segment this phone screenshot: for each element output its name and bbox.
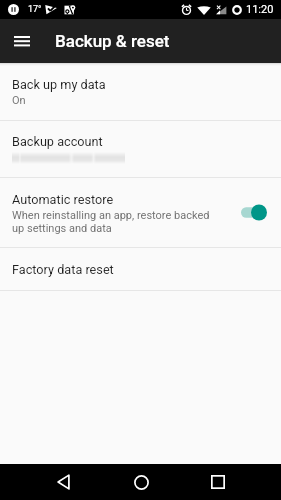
button[interactable]: Automatic restore on	[241, 204, 267, 221]
staticText: When reinstalling an app, restore backed…	[12, 209, 212, 235]
button[interactable]: Automatic restore	[0, 178, 281, 247]
button[interactable]: Back up my data	[0, 63, 281, 120]
staticText: On	[12, 94, 26, 107]
button[interactable]: Recent apps	[200, 464, 236, 500]
staticText: Backup & reset	[55, 31, 170, 51]
button[interactable]: Factory data reset	[0, 248, 281, 290]
staticText: 17°	[28, 4, 42, 15]
staticText: Factory data reset	[12, 262, 114, 277]
button[interactable]: Backup account	[0, 121, 281, 177]
staticText: Backup account	[12, 134, 103, 149]
button[interactable]: Home	[123, 464, 159, 500]
button[interactable]: Back	[45, 464, 81, 500]
staticText: Back up my data	[12, 77, 106, 92]
staticText: 11:20	[246, 3, 274, 16]
button[interactable]: Open navigation drawer	[6, 25, 38, 57]
staticText: Automatic restore	[12, 192, 114, 207]
